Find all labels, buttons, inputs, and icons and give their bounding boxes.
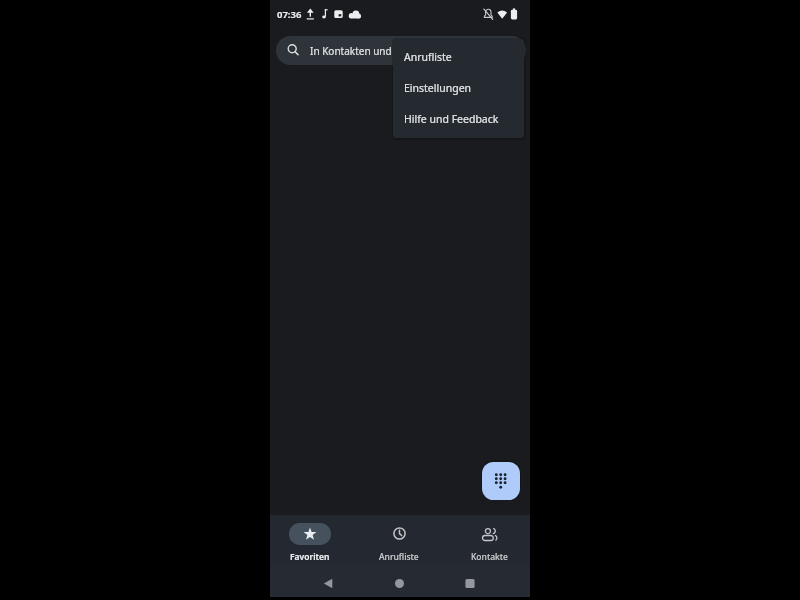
button[interactable]: Anrufliste bbox=[364, 517, 434, 563]
staticText: Kontakte bbox=[471, 551, 508, 563]
button[interactable]: Kontakte bbox=[454, 517, 524, 563]
staticText: In Kontakten und Orten suchen bbox=[310, 44, 459, 58]
staticText: Einstellungen bbox=[404, 81, 472, 95]
staticText: Hilfe und Feedback bbox=[404, 112, 499, 126]
button[interactable]: Hilfe und Feedback bbox=[393, 103, 524, 134]
button[interactable]: Favoriten bbox=[275, 517, 345, 563]
staticText: Anrufliste bbox=[404, 50, 452, 64]
button[interactable]: Einstellungen bbox=[393, 72, 524, 103]
staticText: 07:36 bbox=[277, 8, 302, 21]
button[interactable] bbox=[482, 462, 520, 500]
button[interactable]: In Kontakten und Orten suchen bbox=[276, 36, 526, 65]
button[interactable]: Anrufliste bbox=[393, 41, 524, 72]
staticText: Anrufliste bbox=[379, 551, 419, 563]
staticText: Favoriten bbox=[290, 551, 330, 563]
